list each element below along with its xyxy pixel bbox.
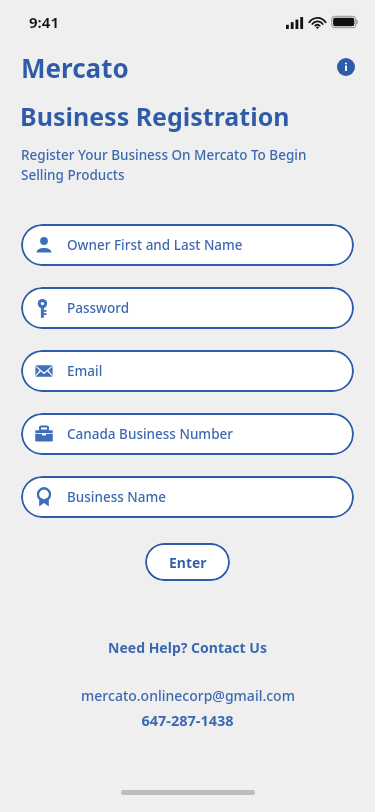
staticText: 9:41: [29, 12, 59, 32]
button[interactable]: Email: [21, 350, 354, 392]
staticText: Email: [67, 362, 103, 380]
button[interactable]: Information: [337, 58, 355, 76]
button[interactable]: Owner First and Last Name: [21, 224, 354, 266]
staticText: Business Name: [67, 488, 167, 506]
staticText: Business Registration: [20, 99, 290, 133]
staticText: Mercato: [21, 50, 129, 85]
button[interactable]: Business Name: [21, 476, 354, 518]
button[interactable]: Canada Business Number: [21, 413, 354, 455]
button[interactable]: mercato.onlinecorp@gmail.com: [81, 686, 295, 705]
staticText: mercato.onlinecorp@gmail.com: [81, 686, 295, 705]
button[interactable]: 647-287-1438: [141, 710, 234, 730]
staticText: Need Help? Contact Us: [108, 638, 267, 657]
staticText: Enter: [169, 553, 207, 572]
button[interactable]: Password: [21, 287, 354, 329]
staticText: Canada Business Number: [67, 425, 233, 443]
staticText: Password: [67, 299, 130, 317]
staticText: Owner First and Last Name: [67, 236, 243, 254]
button[interactable]: Enter: [145, 543, 230, 581]
staticText: Register Your Business On Mercato To Beg…: [21, 146, 341, 184]
button[interactable]: Need Help? Contact Us: [0, 638, 375, 657]
staticText: 647-287-1438: [141, 710, 234, 730]
